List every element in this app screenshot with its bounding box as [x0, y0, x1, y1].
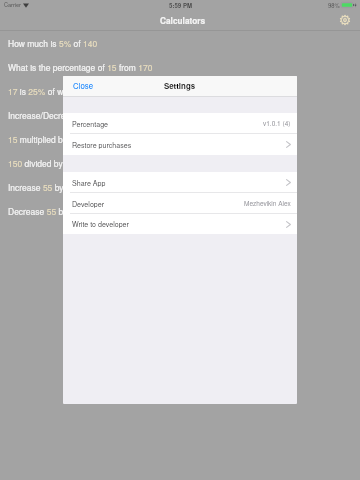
button[interactable]: Settings: [336, 11, 354, 29]
staticText: Increase/Decrease in percentage: [8, 109, 133, 121]
button[interactable]: What is the percentage of 15 from 170: [0, 55, 360, 79]
button[interactable]: Decrease 55 by 30%: [0, 199, 360, 223]
staticText: Percentage: [72, 119, 109, 129]
staticText: How much is 5% of 140: [8, 37, 98, 49]
staticText: 150 divided by 25%: [8, 157, 83, 169]
staticText: Increase 55 by 30%: [8, 181, 83, 193]
staticText: Settings: [164, 80, 196, 91]
button[interactable]: 15 multiplied by 20%: [0, 127, 360, 151]
staticText: 98%: [328, 1, 340, 9]
staticText: 17 is 25% of what number?: [8, 85, 111, 97]
button[interactable]: Increase/Decrease in percentage: [0, 103, 360, 127]
button[interactable]: Percentage: [63, 113, 297, 134]
staticText: 15 multiplied by 20%: [8, 133, 87, 145]
staticText: Mezhevikin Alex: [244, 199, 291, 208]
staticText: Close: [73, 80, 94, 91]
button[interactable]: Restore purchases: [63, 134, 297, 155]
staticText: Decrease 55 by 30%: [8, 205, 87, 217]
staticText: 5:59 PM: [169, 1, 193, 10]
button[interactable]: Close: [63, 76, 104, 96]
staticText: Developer: [72, 199, 105, 209]
staticText: Write to developer: [72, 219, 129, 229]
button[interactable]: Write to developer: [63, 214, 297, 234]
staticText: Share App: [72, 178, 106, 188]
staticText: Restore purchases: [72, 140, 132, 150]
staticText: Carrier: [4, 1, 21, 9]
button[interactable]: 17 is 25% of what number?: [0, 79, 360, 103]
staticText: What is the percentage of 15 from 170: [8, 61, 153, 73]
staticText: Calculators: [160, 15, 206, 27]
button[interactable]: 150 divided by 25%: [0, 151, 360, 175]
staticText: v1.0.1 (4): [263, 119, 291, 128]
button[interactable]: Developer: [63, 193, 297, 214]
button[interactable]: Share App: [63, 172, 297, 193]
button[interactable]: How much is 5% of 140: [0, 31, 360, 55]
button[interactable]: Increase 55 by 30%: [0, 175, 360, 199]
